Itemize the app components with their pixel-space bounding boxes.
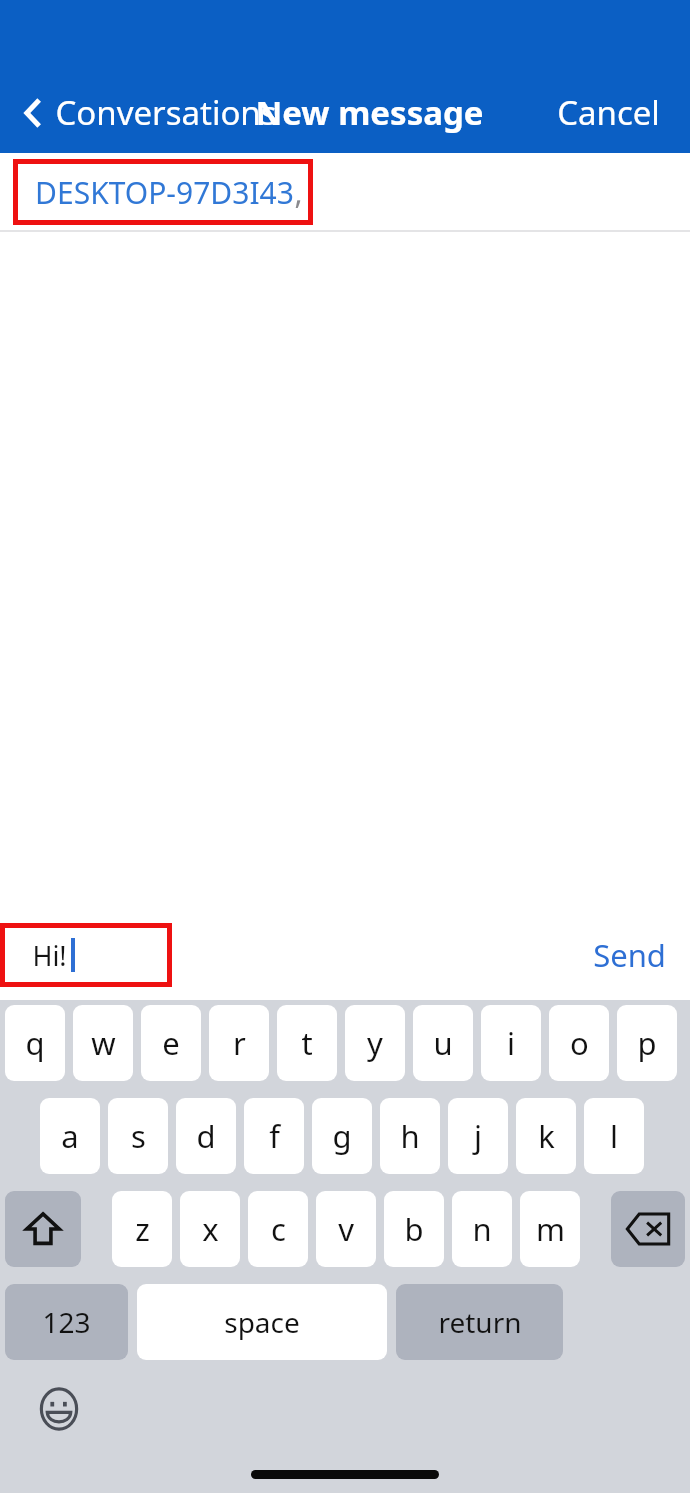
staticText: w [91,1022,116,1064]
button[interactable]: Back [16,86,283,139]
staticText: k [538,1115,555,1157]
staticText: h [400,1115,420,1157]
button[interactable]: l [584,1098,644,1174]
staticText: 123 [42,1303,91,1341]
button[interactable]: Send [587,928,672,982]
staticText: return [438,1303,522,1341]
staticText: m [536,1208,565,1250]
staticText: l [610,1115,618,1157]
button[interactable]: e [141,1005,201,1081]
staticText: Send [593,934,666,976]
staticText: s [131,1115,146,1157]
button[interactable]: DESKTOP-97D3I43 [13,159,313,225]
button[interactable]: u [413,1005,473,1081]
button[interactable]: k [516,1098,576,1174]
button[interactable]: v [316,1191,376,1267]
button[interactable]: r [209,1005,269,1081]
button[interactable]: 123 [5,1284,128,1360]
staticText: Cancel [557,90,660,135]
button[interactable]: n [452,1191,512,1267]
staticText: r [233,1022,246,1064]
button[interactable]: Cancel [549,86,668,139]
button[interactable]: Backspace [611,1191,685,1267]
staticText: f [269,1115,280,1157]
staticText: v [338,1208,354,1250]
button[interactable]: return [396,1284,563,1360]
button[interactable]: g [312,1098,372,1174]
staticText: n [472,1208,492,1250]
staticText: d [196,1115,216,1157]
staticText: z [135,1208,150,1250]
staticText: t [301,1022,313,1064]
button[interactable]: j [448,1098,508,1174]
staticText: e [162,1022,180,1064]
staticText: x [202,1208,219,1250]
button[interactable]: d [176,1098,236,1174]
button[interactable]: i [481,1005,541,1081]
staticText: , [294,172,303,213]
button[interactable]: t [277,1005,337,1081]
staticText: a [61,1115,79,1157]
button[interactable]: z [112,1191,172,1267]
button[interactable]: Hi! [0,923,172,987]
staticText: u [433,1022,453,1064]
button[interactable]: space [137,1284,387,1360]
staticText: Conversations [55,90,277,135]
button[interactable]: Emoji [38,1388,80,1430]
staticText: i [507,1022,515,1064]
button[interactable]: c [248,1191,308,1267]
button[interactable]: f [244,1098,304,1174]
button[interactable]: h [380,1098,440,1174]
staticText: c [271,1208,286,1250]
button[interactable]: a [40,1098,100,1174]
button[interactable]: x [180,1191,240,1267]
staticText: New message [255,90,484,135]
button[interactable]: w [73,1005,133,1081]
button[interactable]: s [108,1098,168,1174]
button[interactable]: p [617,1005,677,1081]
button[interactable]: q [5,1005,65,1081]
staticText: g [332,1115,352,1157]
staticText: Hi! [32,937,67,974]
staticText: y [367,1022,383,1064]
button[interactable]: b [384,1191,444,1267]
staticText: j [474,1115,482,1157]
other: Back [22,96,44,130]
button[interactable]: m [520,1191,580,1267]
staticText: space [224,1303,300,1341]
button[interactable]: y [345,1005,405,1081]
staticText: p [637,1022,657,1064]
staticText: q [25,1022,45,1064]
button[interactable]: Shift [5,1191,81,1267]
staticText: DESKTOP-97D3I43 [35,172,294,213]
staticText: o [570,1022,589,1064]
staticText: b [404,1208,424,1250]
button[interactable]: o [549,1005,609,1081]
